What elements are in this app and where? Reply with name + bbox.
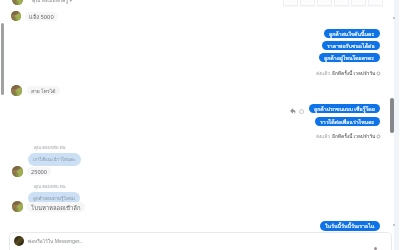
button[interactable]: เราได้แนะนำาไหนคะ — [28, 153, 81, 166]
staticText: เราได้แนะนำาไหนคะ — [33, 156, 76, 163]
button[interactable]: ราวได้ต่อเพื่อแว่าไหนคะ — [315, 117, 380, 126]
button[interactable]: ลูกค้าสนใจคันนี้นคะ — [324, 29, 380, 38]
staticText: สาย โทรได้ — [31, 87, 56, 95]
staticText: คุณ ตอบกลับ ตน — [34, 144, 66, 151]
staticText: อีกทีครั้งนี้ เวลปจำวัน — [332, 132, 376, 140]
staticText: พ่อหรือไว้ใน Messenger... — [28, 237, 83, 245]
staticText: คุณ ส่งเมื่อสักครู่ ▾ — [32, 0, 73, 4]
button[interactable]: โบนหาหลอดเข้าลัก — [27, 202, 85, 212]
button[interactable]: React — [296, 106, 306, 116]
button[interactable]: ลูกค้าอยู่ไหนโดยตรคะ — [319, 53, 380, 62]
staticText: 25000 — [31, 168, 47, 176]
button[interactable]: สาย โทรได้ — [27, 86, 60, 95]
staticText: ลูกค้าสนใจคันนี้นคะ — [329, 30, 375, 38]
button[interactable]: Reply — [288, 106, 298, 116]
staticText: ลูกค้าปรกขนแบบ เชื่อรู้โดย — [314, 105, 375, 113]
staticText: ส่งแล้ว — [316, 132, 332, 140]
button[interactable]: ลูกค้าปรกขนแบบ เชื่อรู้โดย — [309, 104, 380, 113]
button[interactable]: ลูกค้าสอบถามรู้โดยม — [28, 192, 80, 204]
staticText: ราวได้ต่อเพื่อแว่าไหนคะ — [320, 118, 375, 126]
staticText: คุณ ตอบกลับ ตน — [34, 183, 66, 190]
button[interactable]: พ่อหรือไว้ใน Messenger... — [9, 232, 392, 250]
staticText: โบนหาหลอดเข้าลัก — [31, 203, 81, 212]
staticText: อีกทีครั้งนี้ เวลปจำวัน — [332, 69, 376, 77]
button[interactable]: แจ้ง 5000 — [25, 12, 58, 21]
button[interactable]: ในวันนี้วันนี้วันเราอไน — [320, 221, 380, 231]
staticText: ในวันนี้วันนี้วันเราอไน — [325, 222, 375, 230]
staticText: ราคาพอรับชนแได้ต่อ — [327, 42, 375, 50]
staticText: ลูกค้าอยู่ไหนโดยตรคะ — [324, 54, 375, 62]
button[interactable]: ราคาพอรับชนแได้ต่อ — [322, 41, 380, 50]
button[interactable]: 25000 — [27, 167, 51, 176]
staticText: แจ้ง 5000 — [29, 12, 54, 21]
staticText: ส่งแล้ว — [316, 69, 332, 77]
staticText: ลูกค้าสอบถามรู้โดยม — [33, 195, 75, 202]
